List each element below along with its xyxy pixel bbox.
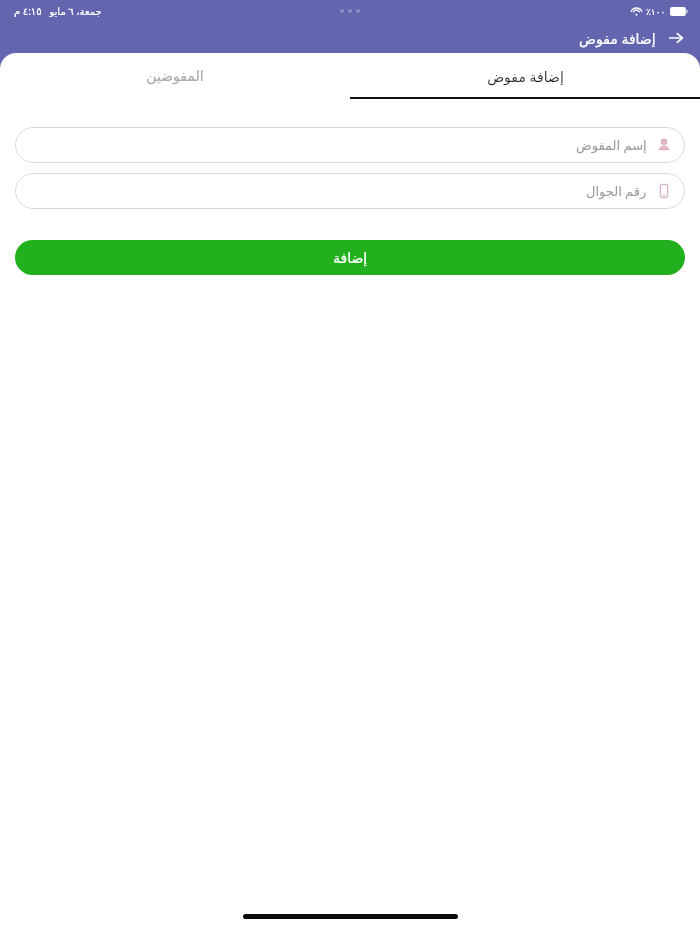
staticText: إضافة مفوض <box>487 67 564 86</box>
button[interactable]: إسم المفوض <box>15 127 685 163</box>
staticText: إضافة مفوض <box>579 29 656 48</box>
staticText: ٪١٠٠ <box>646 7 666 17</box>
staticText: إسم المفوض <box>576 136 647 154</box>
button[interactable]: إضافة مفوض <box>350 53 700 99</box>
staticText: إضافة <box>333 250 368 266</box>
other: Name <box>655 136 673 154</box>
button[interactable]: إضافة مفوض <box>577 26 688 50</box>
staticText: جمعة، ٦ مايو ٤:١٥ م <box>14 4 102 18</box>
other: Back <box>666 28 686 48</box>
button[interactable]: المفوضين <box>0 53 350 99</box>
other: Phone <box>655 182 673 200</box>
staticText: المفوضين <box>146 68 204 84</box>
staticText: رقم الجوال <box>586 182 647 200</box>
button[interactable]: رقم الجوال <box>15 173 685 209</box>
button[interactable]: إضافة <box>15 240 685 275</box>
